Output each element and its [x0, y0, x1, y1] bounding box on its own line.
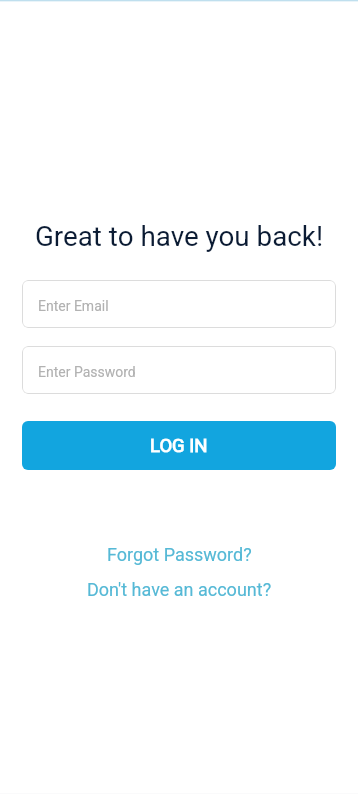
- button[interactable]: Enter Email: [22, 280, 336, 328]
- staticText: Don't have an account?: [87, 579, 272, 600]
- staticText: Great to have you back!: [0, 220, 358, 253]
- staticText: Enter Password: [38, 364, 136, 380]
- staticText: Forgot Password?: [107, 544, 252, 565]
- button[interactable]: Don't have an account?: [87, 579, 272, 600]
- button[interactable]: Forgot Password?: [107, 544, 252, 565]
- button[interactable]: Enter Password: [22, 346, 336, 394]
- button[interactable]: LOG IN: [22, 421, 336, 470]
- staticText: Enter Email: [38, 298, 109, 314]
- staticText: LOG IN: [150, 435, 208, 457]
